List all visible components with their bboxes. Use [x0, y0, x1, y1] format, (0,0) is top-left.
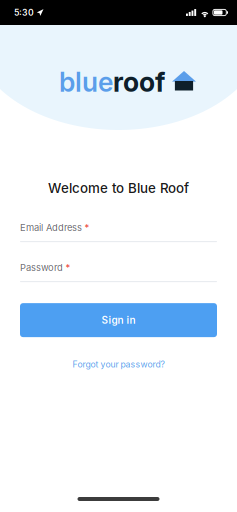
- button[interactable]: Sign in: [20, 303, 217, 337]
- staticText: *: [65, 262, 70, 273]
- staticText: *: [84, 222, 89, 233]
- staticText: Password: [20, 262, 63, 273]
- staticText: 5:30: [14, 7, 34, 18]
- staticText: blue: [59, 66, 113, 98]
- staticText: roof: [113, 66, 165, 98]
- staticText: Email Address: [20, 222, 82, 233]
- staticText: Welcome to Blue Roof: [48, 180, 189, 196]
- button[interactable]: Forgot your password?: [72, 353, 164, 376]
- staticText: Sign in: [101, 314, 135, 326]
- staticText: Forgot your password?: [72, 359, 164, 370]
